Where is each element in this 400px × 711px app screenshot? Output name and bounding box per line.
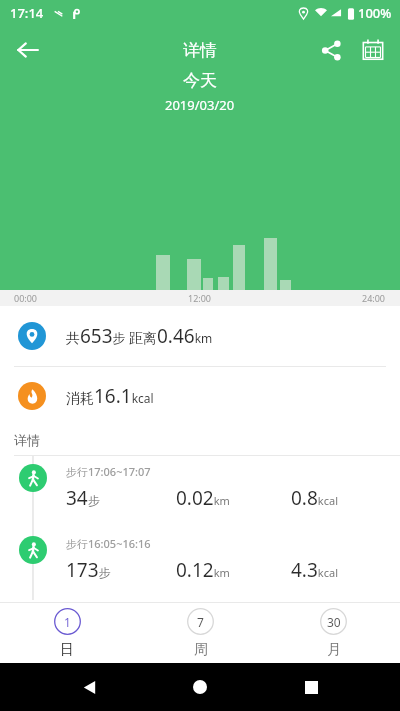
staticText: 30 [327,614,341,630]
button[interactable]: 共653步 距离0.46km [0,306,400,366]
button[interactable]: Share [310,29,352,71]
button[interactable]: Home [178,665,222,709]
button[interactable]: Recents [289,665,333,709]
staticText: 周 [194,641,208,659]
button[interactable]: 7 [134,603,267,663]
staticText: 0.02km [176,485,230,511]
staticText: 12:00 [188,292,212,304]
button[interactable]: Back [67,665,111,709]
button[interactable]: 1 [0,603,134,663]
staticText: 0.8kcal [291,485,338,511]
staticText: 详情 [14,432,40,448]
staticText: 0.12km [176,557,230,583]
staticText: 7 [197,614,204,630]
button[interactable]: 步行17:06~17:07 [0,456,400,528]
staticText: 00:00 [14,292,38,304]
button[interactable]: Back [6,28,50,72]
staticText: 100% [358,4,392,22]
staticText: 共653步 距离0.46km [66,323,213,349]
staticText: 17:14 [10,4,44,22]
staticText: 4.3kcal [291,557,338,583]
staticText: 步行16:05~16:16 [66,536,151,551]
staticText: 2019/03/20 [165,96,235,114]
button[interactable]: 消耗16.1kcal [0,367,400,425]
button[interactable]: 步行16:05~16:16 [0,528,400,600]
staticText: 34步 [66,485,100,511]
staticText: 消耗16.1kcal [66,383,154,409]
button[interactable]: 30 [267,603,400,663]
staticText: 月 [327,641,341,659]
button[interactable]: Calendar [352,29,394,71]
staticText: 173步 [66,557,111,583]
staticText: 日 [60,641,74,659]
staticText: 1 [64,614,71,630]
staticText: 今天 [183,70,217,91]
staticText: 24:00 [362,292,386,304]
staticText: 详情 [183,40,217,61]
staticText: 步行17:06~17:07 [66,464,151,479]
